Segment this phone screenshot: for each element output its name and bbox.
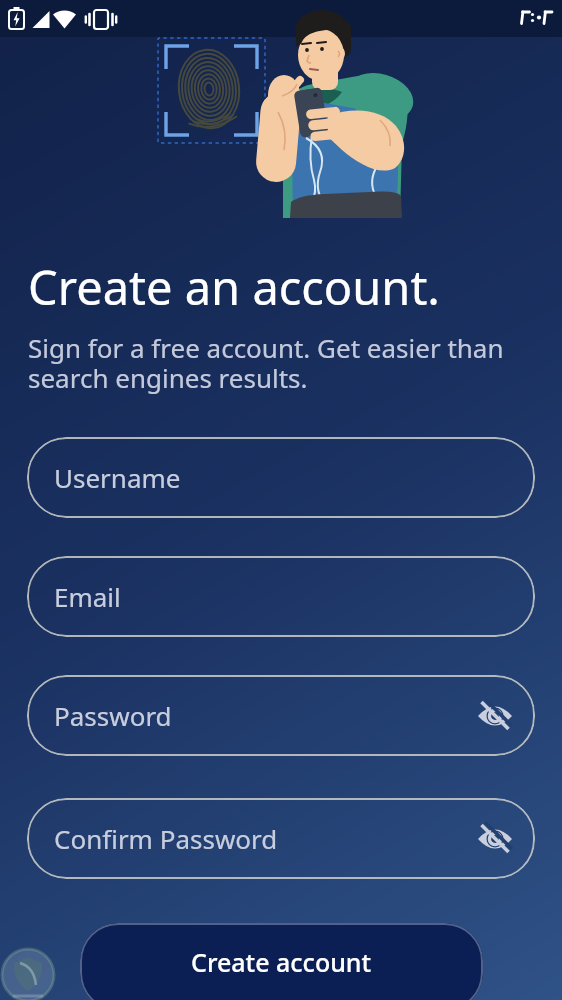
staticText: Password	[54, 698, 172, 733]
staticText: Email	[54, 579, 121, 614]
button[interactable]: Username	[27, 437, 535, 518]
button[interactable]: Password	[27, 675, 535, 756]
button[interactable]: Confirm Password	[27, 798, 535, 879]
staticText: Sign for a free account. Get easier than…	[28, 330, 504, 396]
staticText: Create account	[191, 945, 372, 979]
staticText: Create an account.	[28, 255, 440, 319]
staticText: Confirm Password	[54, 821, 278, 856]
button[interactable]: Email	[27, 556, 535, 637]
staticText: Username	[54, 460, 181, 495]
button[interactable]: Create account	[80, 923, 483, 1000]
